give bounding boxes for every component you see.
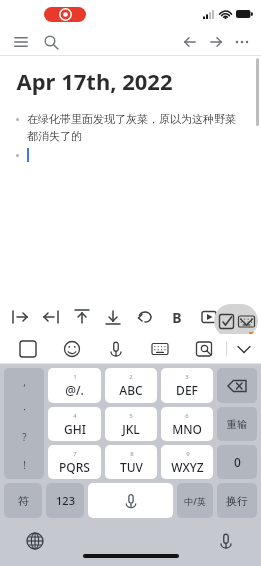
button[interactable]: 符: [4, 483, 42, 518]
staticText: @/.: [65, 382, 84, 398]
staticText: MNO: [172, 421, 202, 437]
button[interactable]: More options: [229, 29, 255, 55]
staticText: 9: [186, 450, 190, 458]
button[interactable]: Search: [38, 29, 64, 55]
staticText: 重输: [227, 418, 247, 431]
button[interactable]: 中/英: [177, 483, 213, 518]
button[interactable]: 5: [105, 407, 157, 441]
staticText: 1: [73, 373, 77, 381]
staticText: 5: [129, 412, 133, 420]
staticText: 2: [129, 373, 133, 381]
button[interactable]: 6: [161, 407, 213, 441]
button[interactable]: Move up: [66, 300, 97, 334]
button[interactable]: Checklist: [216, 311, 236, 331]
button[interactable]: Bold: [161, 300, 193, 334]
button[interactable]: Back: [177, 29, 203, 55]
button[interactable]: Sogou: [6, 334, 50, 364]
button[interactable]: Backspace: [217, 368, 257, 403]
staticText: 中/英: [184, 495, 206, 507]
staticText: 7: [73, 450, 77, 458]
button[interactable]: 2: [105, 368, 157, 403]
staticText: DEF: [176, 382, 198, 398]
button[interactable]: 123: [46, 483, 84, 518]
button[interactable]: 0: [217, 445, 257, 479]
button[interactable]: Return: [129, 300, 161, 334]
staticText: 8: [130, 450, 134, 458]
staticText: 换行: [226, 494, 248, 508]
staticText: TUV: [120, 459, 143, 475]
button[interactable]: Image: [182, 334, 226, 364]
button[interactable]: 1: [48, 368, 101, 403]
staticText: JKL: [122, 421, 140, 437]
staticText: 6: [185, 412, 189, 420]
button[interactable]: Hide keyboard: [236, 311, 256, 331]
button[interactable]: ,: [4, 368, 44, 479]
staticText: Apr 17th, 2022: [16, 66, 173, 96]
button[interactable]: Emoji: [50, 334, 94, 364]
button[interactable]: Voice input: [213, 528, 239, 554]
staticText: ,: [23, 375, 26, 389]
staticText: 4: [73, 412, 77, 420]
button[interactable]: Keyboard settings: [138, 334, 182, 364]
button[interactable]: 8: [105, 445, 157, 479]
staticText: ?: [22, 430, 27, 444]
staticText: ABC: [119, 382, 143, 398]
button[interactable]: Collapse keyboard: [227, 334, 261, 364]
button[interactable]: Voice input: [94, 334, 138, 364]
button[interactable]: Indent: [4, 300, 35, 334]
staticText: GHI: [64, 421, 86, 437]
staticText: 123: [56, 493, 75, 508]
button[interactable]: Change language: [22, 528, 48, 554]
staticText: PQRS: [59, 459, 90, 475]
button[interactable]: Space, voice input: [88, 483, 173, 518]
staticText: WXYZ: [171, 459, 204, 475]
button[interactable]: Move down: [97, 300, 129, 334]
button[interactable]: 3: [161, 368, 213, 403]
button[interactable]: 9: [161, 445, 213, 479]
button[interactable]: 7: [48, 445, 101, 479]
button[interactable]: Menu: [8, 29, 34, 55]
button[interactable]: Forward: [203, 29, 229, 55]
staticText: 在绿化带里面发现了灰菜，原以为这种野菜都消失了的: [27, 112, 245, 143]
staticText: 符: [18, 494, 29, 508]
staticText: !: [23, 458, 26, 472]
staticText: 0: [234, 454, 241, 470]
staticText: ·: [23, 402, 26, 416]
staticText: 3: [185, 373, 189, 381]
button[interactable]: 重输: [217, 407, 257, 441]
button[interactable]: Recording: [44, 7, 86, 22]
button[interactable]: Media: [193, 300, 225, 334]
button[interactable]: Outdent: [35, 300, 66, 334]
button[interactable]: 4: [48, 407, 101, 441]
staticText: B: [172, 308, 182, 327]
button[interactable]: 换行: [217, 483, 257, 518]
